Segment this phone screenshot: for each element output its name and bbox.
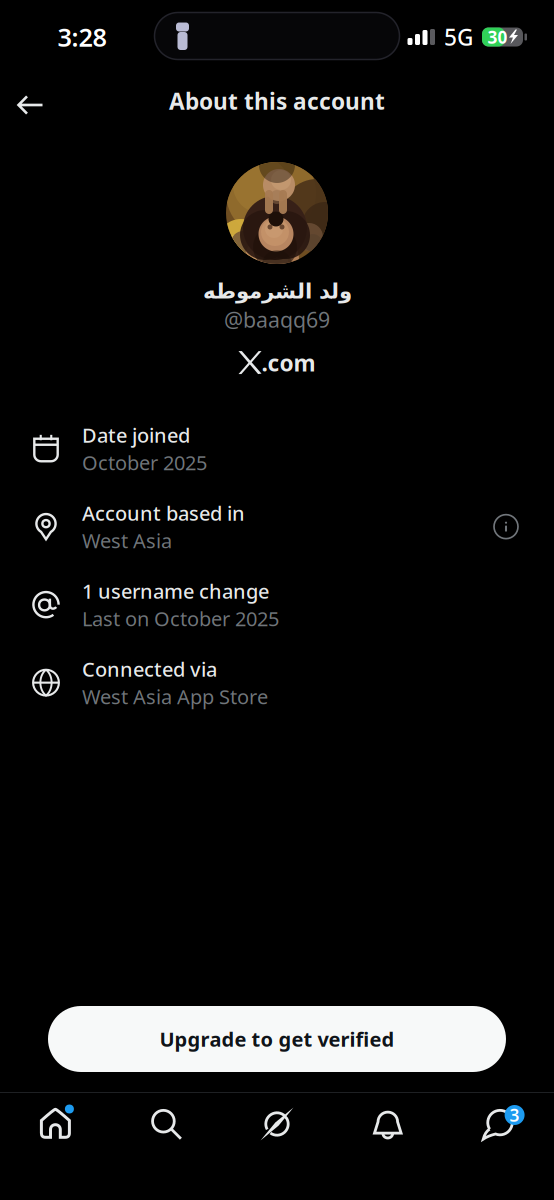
- staticText: About this account: [169, 86, 385, 116]
- staticText: Last on October 2025: [82, 605, 279, 632]
- staticText: ولد الشرموطه: [202, 279, 351, 303]
- staticText: 3: [510, 1103, 520, 1126]
- button[interactable]: Search: [111, 1093, 222, 1155]
- button[interactable]: Back: [0, 74, 60, 128]
- staticText: @baaqq69: [224, 305, 330, 333]
- button[interactable]: Date joined: [0, 410, 554, 488]
- staticText: 5G: [444, 22, 473, 52]
- staticText: Date joined: [82, 422, 190, 448]
- staticText: Upgrade to get verified: [159, 1026, 394, 1052]
- staticText: 30: [487, 25, 507, 48]
- staticText: 3:28: [57, 20, 106, 54]
- button[interactable]: 1 username change: [0, 566, 554, 644]
- button[interactable]: Notifications: [332, 1093, 443, 1155]
- button[interactable]: Home: [0, 1093, 111, 1155]
- staticText: October 2025: [82, 449, 207, 476]
- staticText: 1 username change: [82, 578, 269, 604]
- staticText: .com: [261, 347, 315, 378]
- button[interactable]: Upgrade to get verified: [48, 1006, 506, 1072]
- staticText: Account based in: [82, 500, 245, 526]
- staticText: West Asia App Store: [82, 683, 268, 710]
- button[interactable]: Grok: [222, 1093, 332, 1155]
- staticText: Connected via: [82, 656, 217, 682]
- button[interactable]: Messages: [443, 1093, 554, 1155]
- button[interactable]: Account based in: [0, 488, 554, 566]
- button[interactable]: Connected via: [0, 644, 554, 722]
- staticText: West Asia: [82, 527, 172, 554]
